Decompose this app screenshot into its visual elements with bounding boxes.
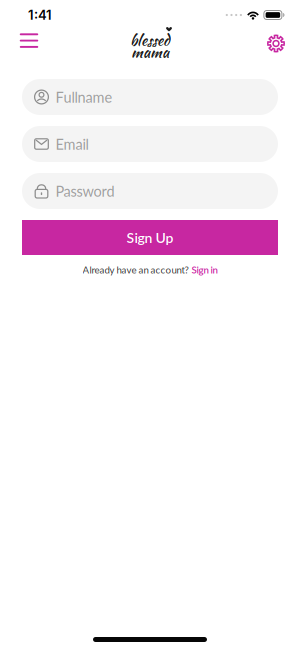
- staticText: 1:41: [28, 7, 52, 23]
- button[interactable]: Email: [22, 126, 278, 162]
- staticText: Password: [55, 182, 114, 200]
- button[interactable]: Menu: [14, 29, 44, 53]
- button[interactable]: Sign in: [82, 264, 217, 276]
- button[interactable]: Settings: [264, 31, 288, 55]
- staticText: Email: [55, 135, 88, 153]
- staticText: mama: [131, 40, 169, 63]
- staticText: Fullname: [55, 88, 112, 106]
- staticText: Sign in: [191, 264, 217, 276]
- staticText: Already have an account?: [82, 264, 188, 276]
- staticText: blessed: [130, 29, 170, 51]
- staticText: Sign Up: [126, 229, 173, 246]
- button[interactable]: Sign Up: [22, 220, 278, 255]
- button[interactable]: Password: [22, 173, 278, 209]
- button[interactable]: Fullname: [22, 79, 278, 115]
